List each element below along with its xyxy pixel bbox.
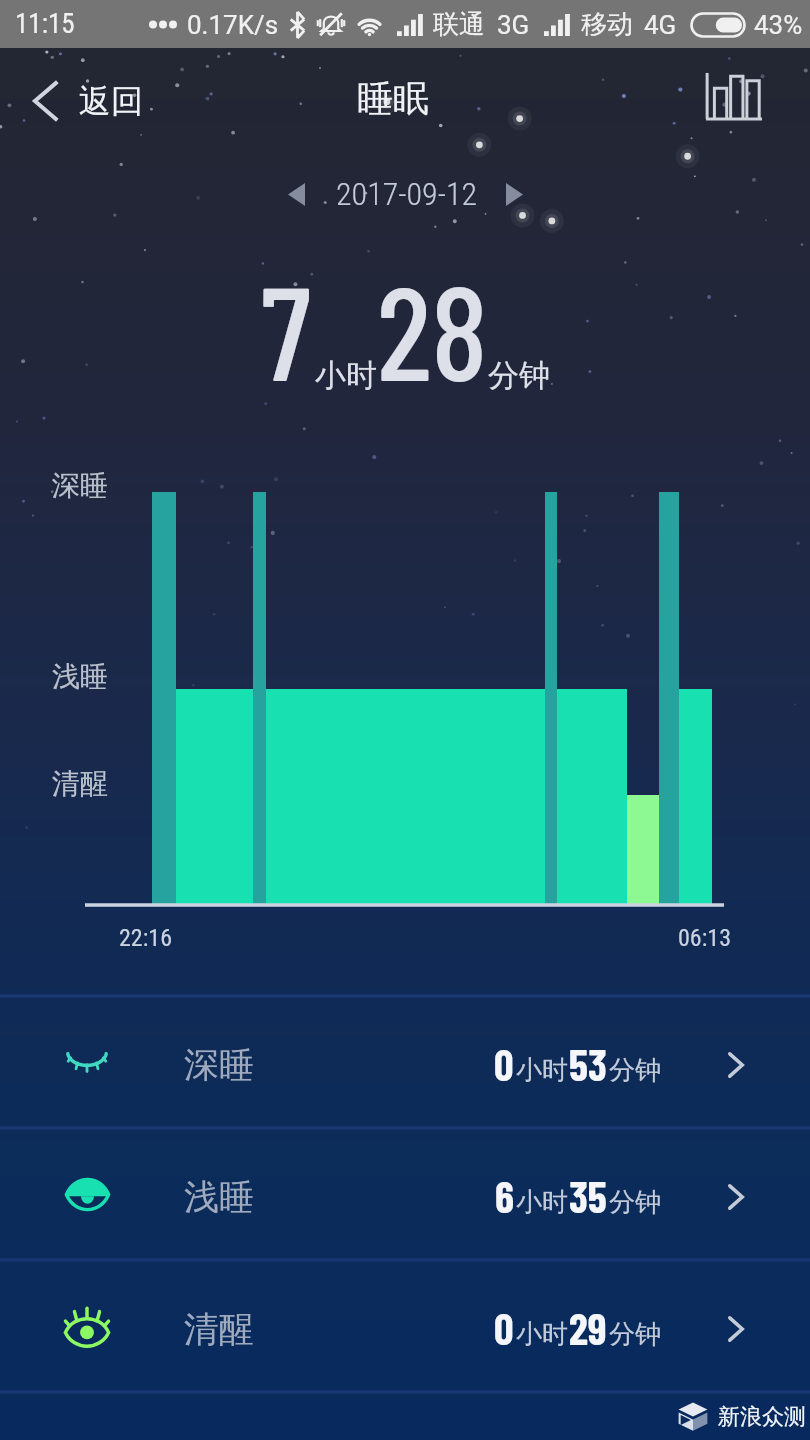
staticText: 小时 [516, 1054, 568, 1087]
staticText: 清醒 [52, 766, 108, 801]
staticText: 7 [261, 250, 311, 407]
staticText: 43% [754, 10, 803, 40]
staticText: 小时 [516, 1186, 568, 1219]
staticText: 2017-09-12 [336, 175, 478, 213]
staticText: 返回 [79, 81, 143, 121]
staticText: 深睡 [184, 1043, 254, 1087]
staticText: 11:15 [15, 8, 75, 40]
staticText: 22:16 [119, 924, 172, 952]
staticText: 分钟 [609, 1318, 661, 1351]
button[interactable]: Next day [490, 170, 538, 218]
staticText: 清醒 [184, 1307, 254, 1351]
staticText: 分钟 [609, 1186, 661, 1219]
staticText: 小时 [315, 356, 377, 395]
staticText: 联通 [433, 8, 485, 41]
staticText: 分钟 [488, 356, 550, 395]
button[interactable]: 清醒 [0, 1262, 810, 1390]
staticText: 6 [495, 1170, 514, 1222]
staticText: 新浪众测 [718, 1403, 806, 1431]
staticText: 移动 [581, 8, 633, 41]
staticText: 29 [569, 1302, 607, 1354]
staticText: 4G [644, 10, 677, 40]
staticText: 0 [494, 1302, 514, 1354]
staticText: 睡眠 [357, 76, 429, 121]
staticText: 3G [497, 10, 530, 40]
button[interactable]: Statistics [697, 65, 771, 137]
staticText: 53 [569, 1038, 607, 1090]
button[interactable]: Previous day [272, 170, 320, 218]
staticText: 35 [569, 1170, 607, 1222]
staticText: 0 [494, 1038, 514, 1090]
staticText: 深睡 [52, 468, 108, 503]
staticText: 小时 [516, 1318, 568, 1351]
staticText: 分钟 [609, 1054, 661, 1087]
staticText: 浅睡 [52, 659, 108, 694]
staticText: 0.17K/s [187, 10, 279, 40]
staticText: 28 [377, 250, 488, 407]
staticText: 浅睡 [184, 1175, 254, 1219]
staticText: 06:13 [678, 924, 731, 952]
button[interactable]: 返回 [0, 67, 163, 135]
button[interactable]: 深睡 [0, 998, 810, 1126]
button[interactable]: 浅睡 [0, 1130, 810, 1258]
